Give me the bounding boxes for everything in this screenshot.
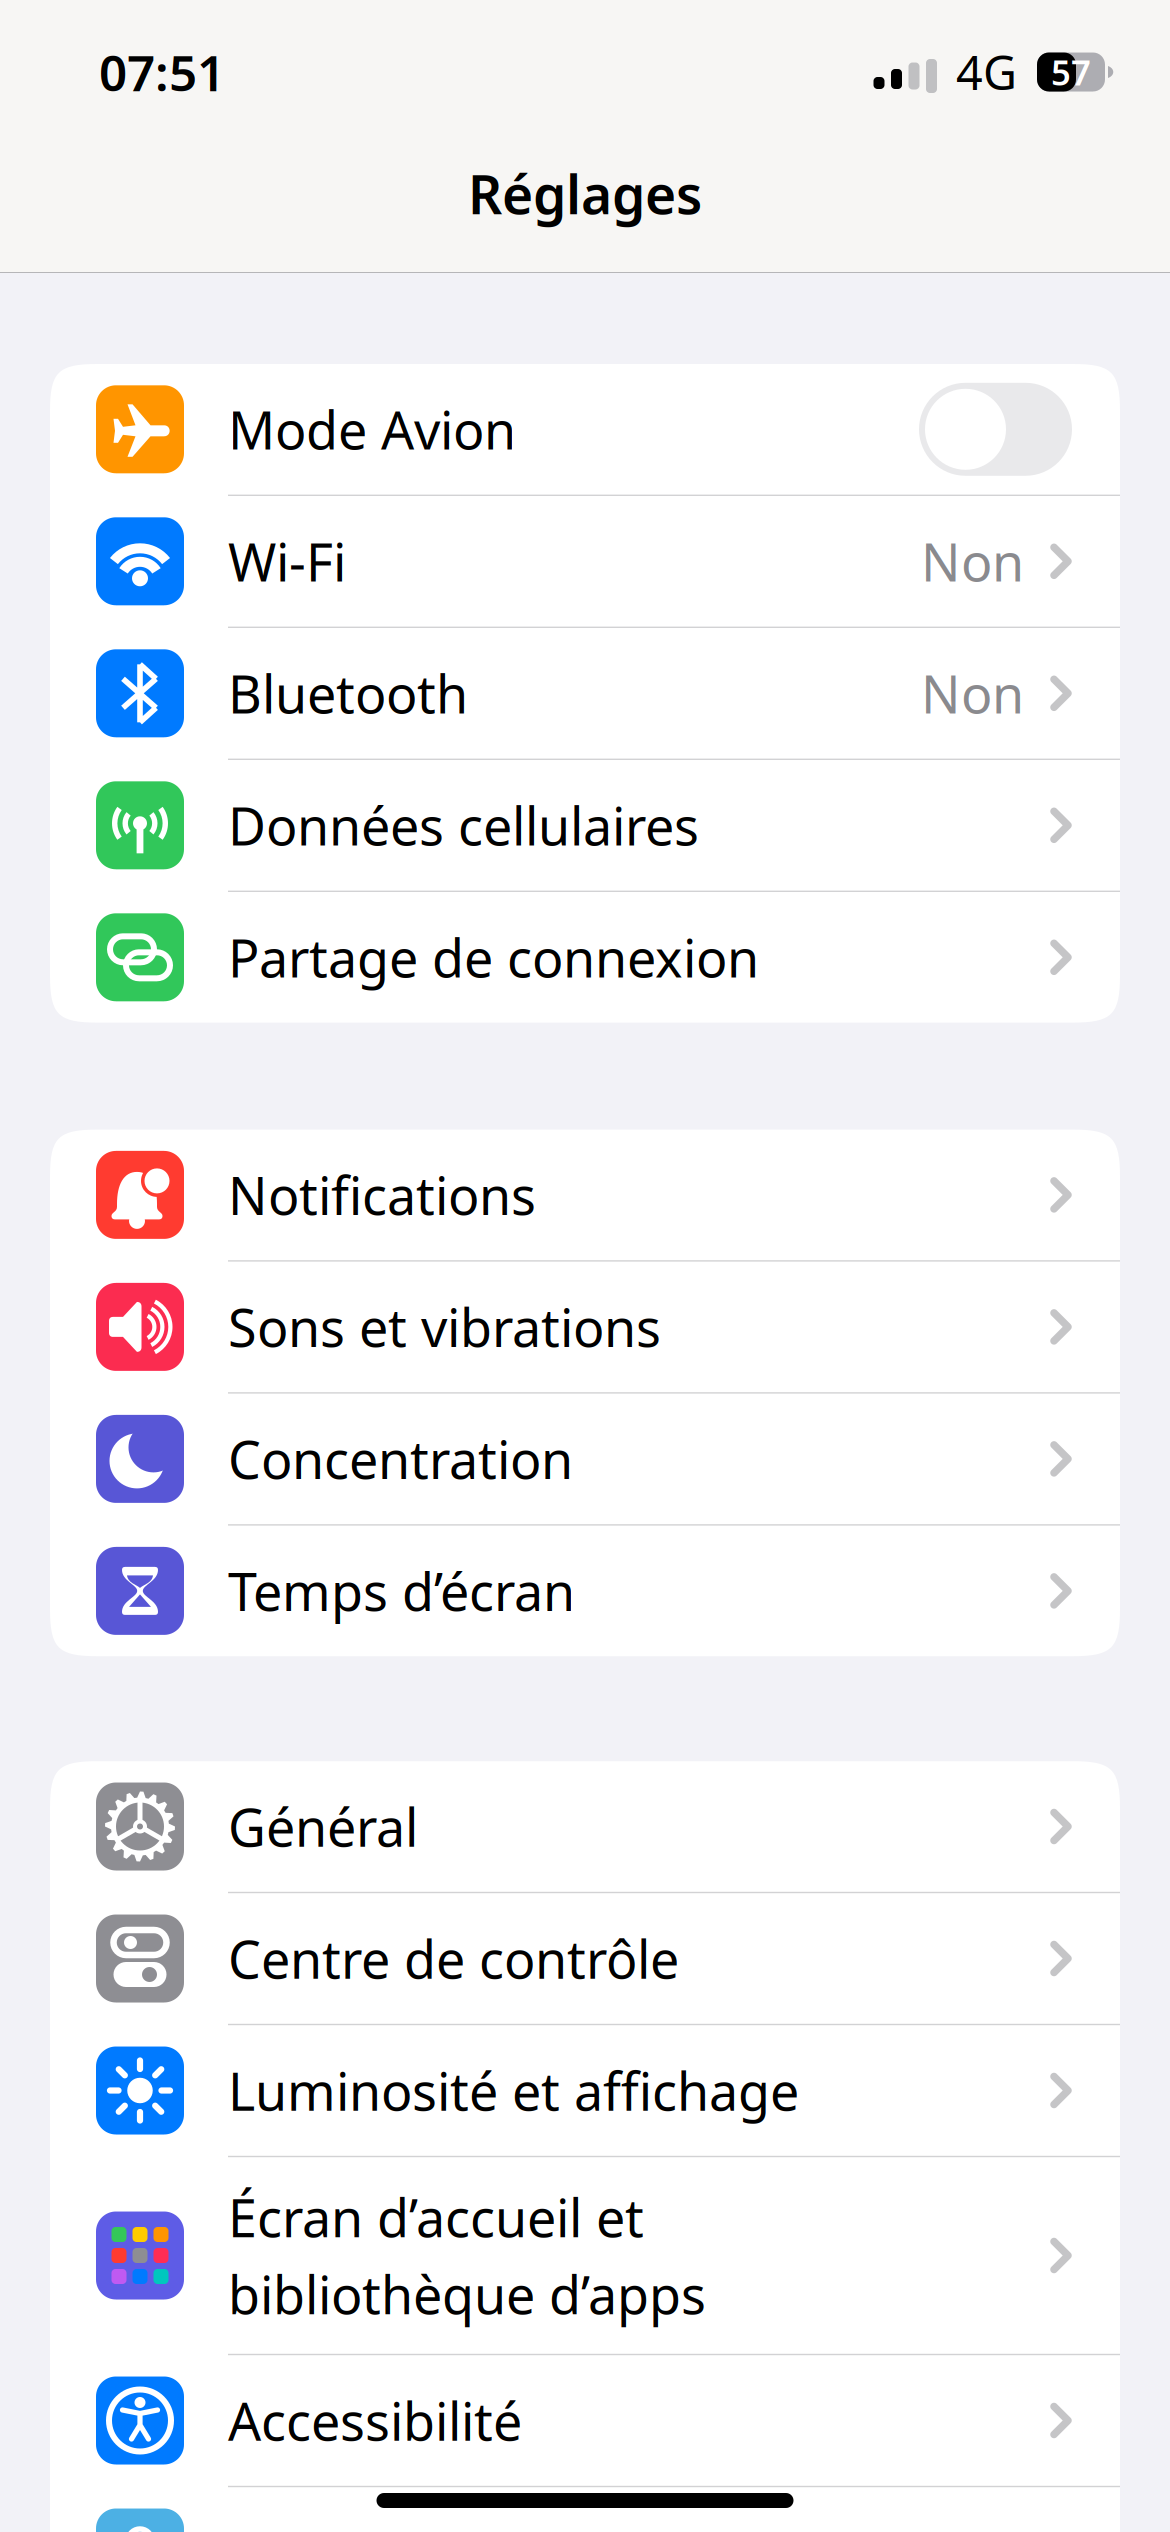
staticText: Temps d’écran — [228, 1556, 575, 1625]
staticText: Données cellulaires — [228, 791, 699, 860]
button[interactable]: Luminosité et affichage — [50, 2025, 1120, 2156]
button[interactable]: Sons et vibrations — [50, 1262, 1120, 1392]
staticText: Non — [921, 527, 1024, 596]
staticText: 57 — [1051, 49, 1091, 95]
staticText: 07:51 — [99, 39, 225, 105]
button[interactable]: Bluetooth — [50, 628, 1120, 759]
staticText: bibliothèque d’apps — [228, 2259, 706, 2329]
staticText: Concentration — [228, 1424, 573, 1493]
staticText: Non — [921, 659, 1024, 728]
button[interactable]: Général — [50, 1761, 1120, 1892]
staticText: Mode Avion — [228, 395, 516, 464]
staticText: Partage de connexion — [228, 923, 759, 992]
button[interactable]: Partage de connexion — [50, 892, 1120, 1023]
button[interactable]: Temps d’écran — [50, 1526, 1120, 1656]
staticText: Notifications — [228, 1160, 536, 1229]
button[interactable]: Fond d’écran — [50, 2487, 1120, 2532]
staticText: 4G — [956, 41, 1017, 103]
button[interactable]: Écran d’accueil et — [50, 2157, 1120, 2354]
staticText: Centre de contrôle — [228, 1924, 679, 1993]
staticText: Réglages — [468, 158, 702, 229]
button[interactable]: Concentration — [50, 1394, 1120, 1524]
staticText: Général — [228, 1792, 418, 1861]
staticText: Accessibilité — [228, 2386, 522, 2455]
staticText: Wi-Fi — [228, 527, 346, 596]
button[interactable]: Wi-Fi — [50, 496, 1120, 627]
staticText: Luminosité et affichage — [228, 2056, 799, 2125]
button[interactable]: Accessibilité — [50, 2355, 1120, 2486]
staticText: Bluetooth — [228, 659, 468, 728]
button[interactable]: Notifications — [50, 1130, 1120, 1260]
staticText: Écran d’accueil et — [228, 2182, 644, 2251]
button[interactable]: Centre de contrôle — [50, 1893, 1120, 2024]
staticText: Sons et vibrations — [228, 1292, 661, 1361]
button[interactable]: Données cellulaires — [50, 760, 1120, 891]
button[interactable]: Mode Avion — [50, 364, 1120, 495]
